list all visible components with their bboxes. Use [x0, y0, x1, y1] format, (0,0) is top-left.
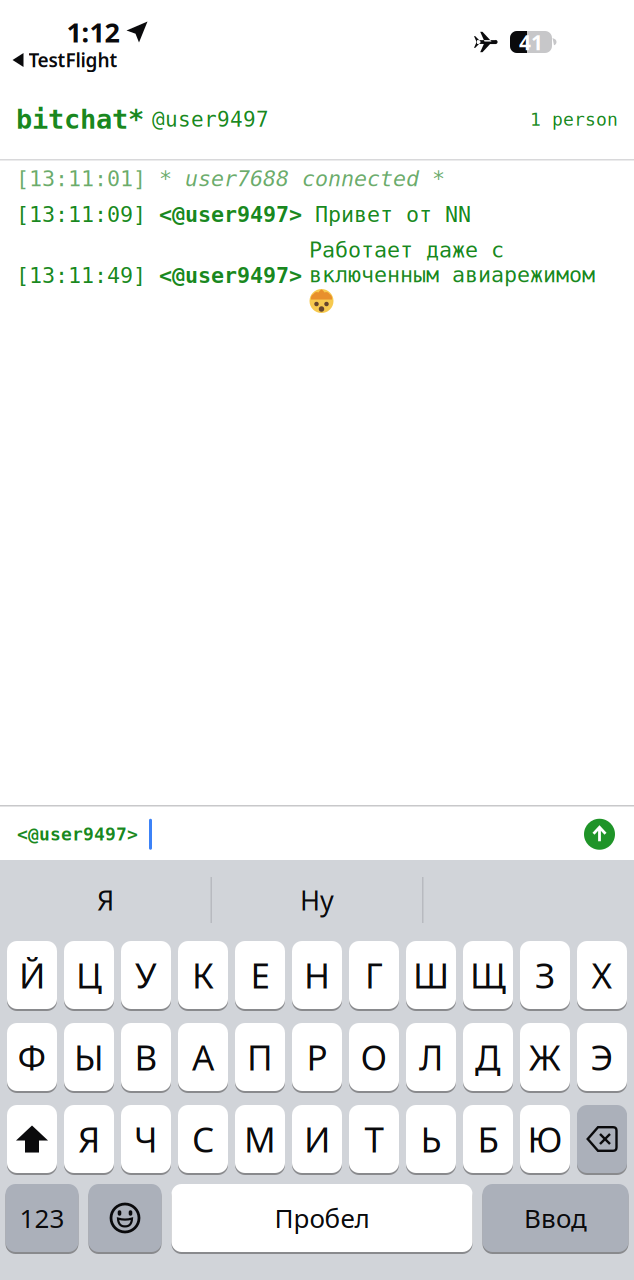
button[interactable]: К	[178, 940, 228, 1010]
staticText: У	[135, 952, 157, 998]
staticText: Е	[250, 952, 269, 998]
staticText: Ф	[17, 1034, 46, 1080]
staticText: З	[535, 952, 555, 998]
button[interactable]: Л	[406, 1022, 456, 1092]
staticText: И	[304, 1116, 330, 1162]
button[interactable]: Ь	[406, 1104, 456, 1174]
staticText: Ц	[76, 952, 102, 998]
button[interactable]: Т	[349, 1104, 399, 1174]
button[interactable]: bitchat*	[16, 104, 144, 135]
staticText: Э	[590, 1034, 613, 1080]
staticText: Ш	[413, 952, 449, 998]
staticText: Я	[97, 882, 114, 918]
staticText: Пробел	[274, 1201, 369, 1235]
staticText: Работает даже с	[309, 238, 504, 262]
staticText: К	[192, 952, 214, 998]
button[interactable]	[88, 1183, 161, 1253]
staticText: Ч	[134, 1116, 158, 1162]
button[interactable]: Ввод	[482, 1183, 628, 1253]
button[interactable]: С	[178, 1104, 228, 1174]
staticText: А	[192, 1034, 214, 1080]
button[interactable]: Щ	[463, 940, 513, 1010]
staticText: С	[192, 1116, 214, 1162]
staticText: Б	[477, 1116, 498, 1162]
staticText: 41	[519, 28, 543, 56]
staticText: Ну	[300, 882, 334, 918]
button[interactable]: Г	[349, 940, 399, 1010]
staticText: Л	[419, 1034, 443, 1080]
button[interactable]	[584, 819, 615, 850]
staticText: @user9497	[152, 108, 269, 131]
staticText: О	[360, 1034, 387, 1080]
button[interactable]: Ш	[406, 940, 456, 1010]
button[interactable]: Ц	[64, 940, 114, 1010]
button[interactable]: О	[349, 1022, 399, 1092]
button[interactable]: Ну	[212, 860, 422, 940]
button[interactable]: Э	[577, 1022, 627, 1092]
button[interactable]: Ж	[520, 1022, 570, 1092]
staticText: Щ	[470, 952, 506, 998]
button[interactable]: И	[292, 1104, 342, 1174]
button[interactable]: Ч	[121, 1104, 171, 1174]
button[interactable]: Б	[463, 1104, 513, 1174]
staticText: включенным авиарежимом	[309, 262, 595, 287]
staticText: Ы	[74, 1034, 104, 1080]
button[interactable]: Х	[577, 940, 627, 1010]
staticText: Р	[306, 1034, 327, 1080]
staticText: 123	[19, 1201, 64, 1235]
staticText: [13:11:09] <@user9497> Привет от NN	[16, 202, 471, 227]
button[interactable]: 1 person	[530, 109, 618, 130]
button[interactable]	[7, 1104, 57, 1174]
button[interactable]: З	[520, 940, 570, 1010]
button[interactable]: 123	[5, 1183, 78, 1253]
staticText: Ж	[529, 1034, 561, 1080]
button[interactable]: Ю	[520, 1104, 570, 1174]
button[interactable]: Ы	[64, 1022, 114, 1092]
staticText: Й	[19, 952, 45, 998]
staticText: [13:11:49] <@user9497>	[16, 263, 302, 288]
staticText: TestFlight	[28, 47, 117, 73]
staticText: Г	[365, 952, 383, 998]
staticText: Ь	[420, 1116, 441, 1162]
staticText: Н	[304, 952, 330, 998]
button[interactable]: Ф	[7, 1022, 57, 1092]
staticText: Ввод	[524, 1201, 587, 1235]
button[interactable]: П	[235, 1022, 285, 1092]
button[interactable]: Д	[463, 1022, 513, 1092]
button[interactable]: Й	[7, 940, 57, 1010]
staticText: bitchat*	[16, 104, 144, 135]
staticText: В	[134, 1034, 157, 1080]
button[interactable]	[577, 1104, 627, 1174]
button[interactable]: М	[235, 1104, 285, 1174]
staticText: Т	[364, 1116, 383, 1162]
staticText: П	[247, 1034, 273, 1080]
staticText: 1:12	[66, 14, 119, 50]
button[interactable]: Я	[64, 1104, 114, 1174]
button[interactable]: Н	[292, 940, 342, 1010]
staticText: <@user9497>	[17, 824, 149, 844]
button[interactable]: Пробел	[171, 1183, 472, 1253]
staticText: Я	[78, 1116, 100, 1162]
staticText: [13:11:01] * user7688 connected *	[16, 166, 445, 191]
button[interactable]: В	[121, 1022, 171, 1092]
button[interactable]: Я	[0, 860, 210, 940]
button[interactable]: Р	[292, 1022, 342, 1092]
staticText: 1 person	[530, 109, 618, 130]
staticText: Д	[475, 1034, 501, 1080]
button[interactable]: У	[121, 940, 171, 1010]
staticText: М	[244, 1116, 276, 1162]
staticText: Х	[591, 952, 612, 998]
button[interactable]: А	[178, 1022, 228, 1092]
button[interactable]: Е	[235, 940, 285, 1010]
staticText: Ю	[527, 1116, 562, 1162]
